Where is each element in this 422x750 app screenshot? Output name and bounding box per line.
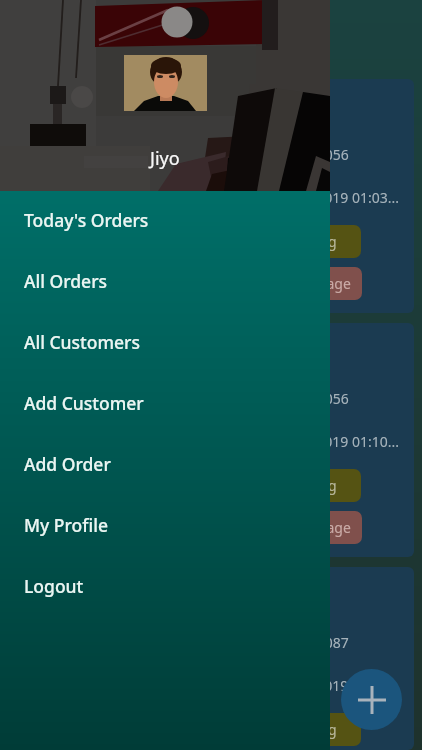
button[interactable]: Add order	[341, 669, 402, 730]
button[interactable]: Order Id : 1087 Customer Mobile : 987654…	[8, 567, 414, 750]
button[interactable]: My Profile	[0, 494, 330, 555]
button[interactable]: Send Message	[244, 267, 362, 300]
staticText: Order Id : 1056 Customer Mobile : 987654…	[24, 389, 349, 408]
button[interactable]: Profile photo	[124, 55, 207, 111]
button[interactable]: Add Order	[0, 433, 330, 494]
button[interactable]: Send Message	[244, 511, 362, 544]
staticText: Pending	[282, 720, 337, 739]
staticText: Add Customer	[24, 391, 144, 415]
button[interactable]: Order Id : 1056 Customer Mobile : 987654…	[8, 79, 414, 313]
button[interactable]: All Customers	[0, 311, 330, 372]
staticText: Jiyo	[150, 146, 180, 171]
staticText: Order Placed Date and Time : 12-07-2019 …	[72, 676, 400, 695]
staticText: Order Placed Date and Time : 12-07-2019 …	[72, 188, 400, 207]
button[interactable]: Pending	[257, 469, 361, 502]
staticText: Pending	[282, 232, 337, 251]
staticText: Send Message	[256, 274, 351, 293]
staticText: Order Id : 1087 Customer Mobile : 987654…	[24, 633, 349, 652]
button[interactable]: Today's Orders	[0, 189, 330, 250]
button[interactable]: All Orders	[0, 250, 330, 311]
staticText: Logout	[24, 574, 84, 598]
button[interactable]: Pending	[257, 225, 361, 258]
staticText: Order Placed Date and Time : 12-07-2019 …	[72, 432, 400, 451]
staticText: All Orders	[24, 269, 108, 293]
button[interactable]: Order Id : 1056 Customer Mobile : 987654…	[8, 323, 414, 557]
staticText: Pending	[282, 476, 337, 495]
staticText: Today's Orders	[24, 208, 149, 232]
staticText: Add Order	[24, 452, 111, 476]
staticText: All Customers	[24, 330, 140, 354]
staticText: Order Id : 1056 Customer Mobile : 987654…	[24, 145, 349, 164]
staticText: My Profile	[24, 513, 108, 537]
button[interactable]: Pending	[257, 713, 361, 746]
staticText: Send Message	[256, 518, 351, 537]
button[interactable]: Add Customer	[0, 372, 330, 433]
button[interactable]: Logout	[0, 555, 330, 616]
